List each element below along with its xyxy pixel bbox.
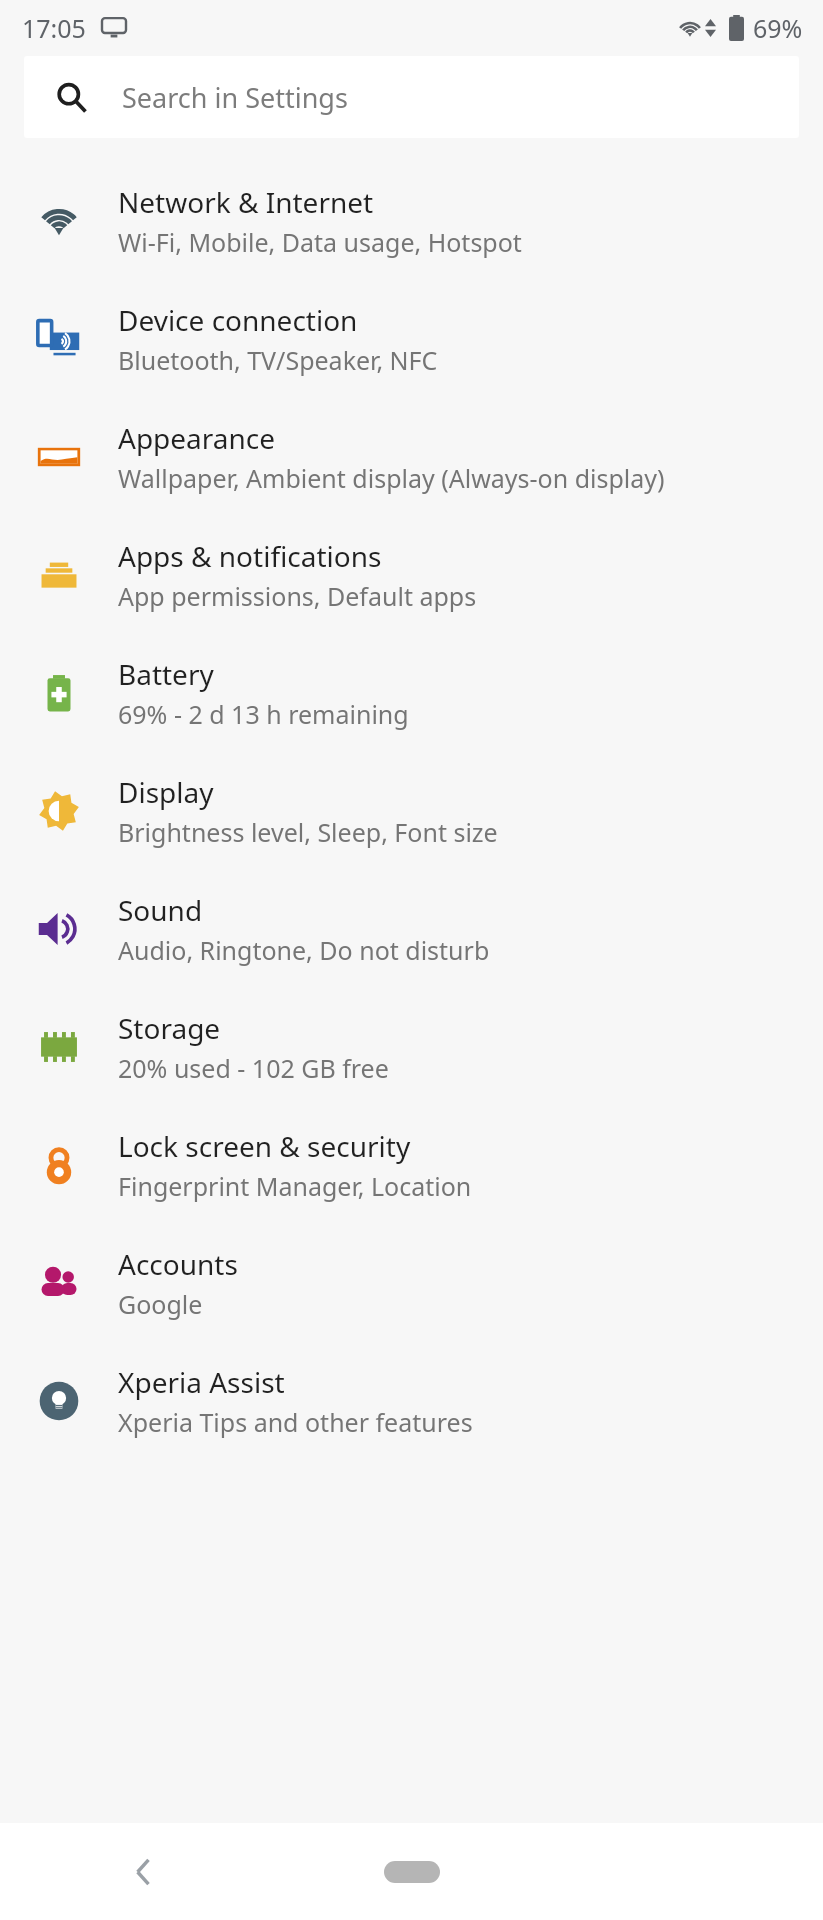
staticText: Search in Settings (122, 79, 348, 116)
staticText: Google (118, 1287, 203, 1321)
button[interactable]: Battery (0, 634, 823, 752)
staticText: 69% (753, 11, 803, 45)
staticText: Bluetooth, TV/Speaker, NFC (118, 343, 438, 377)
button[interactable]: Apps & notifications (0, 516, 823, 634)
staticText: Apps & notifications (118, 537, 382, 575)
staticText: App permissions, Default apps (118, 579, 477, 613)
staticText: Brightness level, Sleep, Font size (118, 815, 498, 849)
staticText: Xperia Assist (118, 1363, 285, 1401)
staticText: Wallpaper, Ambient display (Always-on di… (118, 461, 665, 495)
staticText: Sound (118, 891, 203, 929)
staticText: 17:05 (22, 11, 86, 45)
button[interactable]: Back (108, 1836, 180, 1908)
staticText: 69% - 2 d 13 h remaining (118, 697, 409, 731)
staticText: 20% used - 102 GB free (118, 1051, 389, 1085)
staticText: Display (118, 773, 214, 811)
button[interactable]: Storage (0, 988, 823, 1106)
button[interactable]: Display (0, 752, 823, 870)
staticText: Battery (118, 655, 214, 693)
staticText: Accounts (118, 1245, 238, 1283)
staticText: Storage (118, 1009, 221, 1047)
button[interactable]: Home (384, 1861, 440, 1883)
button[interactable]: Device connection (0, 280, 823, 398)
button[interactable]: Search (24, 56, 799, 138)
staticText: Audio, Ringtone, Do not disturb (118, 933, 490, 967)
button[interactable]: Appearance (0, 398, 823, 516)
button[interactable]: Accounts (0, 1224, 823, 1342)
staticText: Fingerprint Manager, Location (118, 1169, 472, 1203)
staticText: Appearance (118, 419, 276, 457)
button[interactable]: Network & Internet (0, 162, 823, 280)
staticText: Wi-Fi, Mobile, Data usage, Hotspot (118, 225, 522, 259)
button[interactable]: Xperia Assist (0, 1342, 823, 1460)
staticText: Device connection (118, 301, 358, 339)
button[interactable]: Lock screen & security (0, 1106, 823, 1224)
staticText: Network & Internet (118, 183, 374, 221)
staticText: Lock screen & security (118, 1127, 411, 1165)
other: Search (56, 82, 88, 114)
staticText: Xperia Tips and other features (118, 1405, 473, 1439)
button[interactable]: Sound (0, 870, 823, 988)
